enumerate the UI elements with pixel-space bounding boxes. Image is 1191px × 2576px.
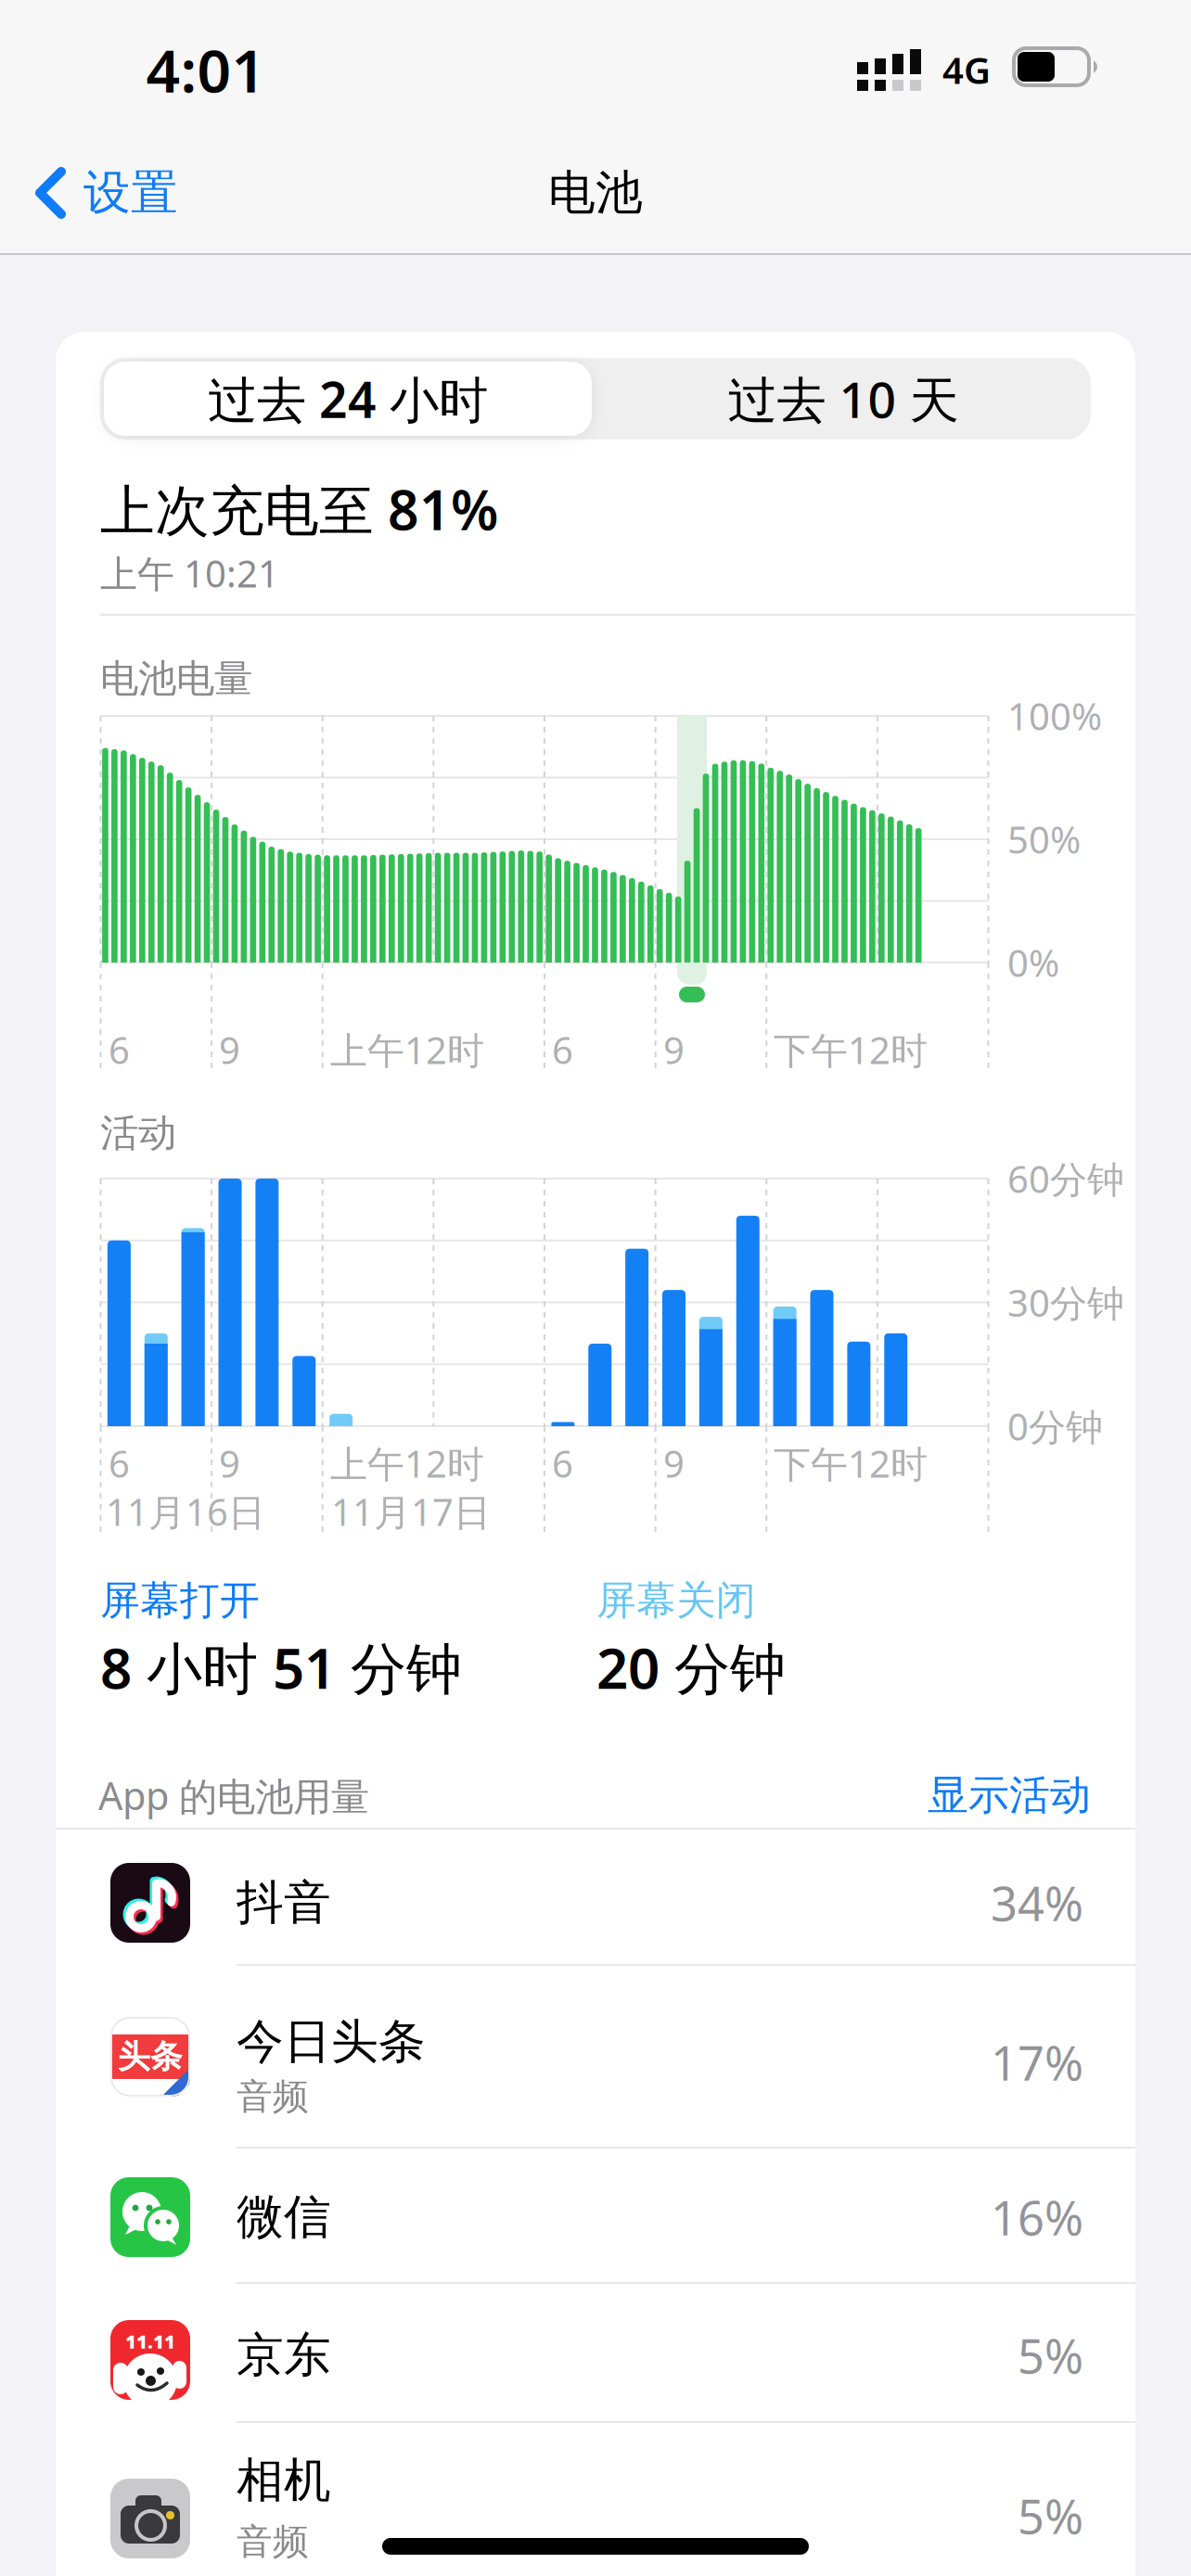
staticText: 9 [219,1439,240,1488]
staticText: 今日头条 [237,2013,426,2071]
staticText: 上次充电至 81% [100,473,498,545]
button[interactable]: 抖音 [56,1829,1135,1965]
button[interactable]: 设置 [33,163,178,223]
staticText: 头条 [118,2037,183,2076]
staticText: 相机 [237,2452,331,2509]
staticText: 京东 [237,2326,331,2384]
staticText: App 的电池用量 [98,1770,369,1821]
staticText: 过去 10 天 [728,366,959,432]
staticText: 6 [552,1439,573,1488]
staticText: 音频 [237,2520,309,2564]
staticText: 4:01 [146,30,266,109]
staticText: 下午12时 [774,1439,928,1488]
staticText: 6 [109,1439,130,1488]
staticText: 8 小时 51 分钟 [100,1630,462,1704]
staticText: 屏幕打开 [100,1576,260,1625]
button[interactable]: 显示活动 [813,1769,1091,1821]
staticText: 上午12时 [330,1439,484,1488]
staticText: 微信 [237,2188,331,2246]
staticText: 0% [1007,938,1059,987]
staticText: 6 [552,1025,573,1074]
staticText: 11月17日 [331,1487,491,1536]
staticText: 4G [942,45,991,94]
staticText: 显示活动 [928,1770,1091,1820]
staticText: 活动 [100,1110,176,1157]
staticText: 电池电量 [100,655,252,702]
staticText: 上午12时 [330,1025,484,1074]
button[interactable]: 微信 [56,2148,1135,2283]
staticText: 6 [109,1025,130,1074]
button[interactable]: 过去 24 小时 [104,362,592,436]
staticText: 过去 24 小时 [208,366,488,432]
staticText: 50% [1007,815,1081,864]
staticText: 电池 [548,164,643,222]
button[interactable]: 头条 [56,1965,1135,2148]
staticText: 上午 10:21 [100,548,279,598]
staticText: 34% [991,1872,1083,1934]
staticText: 60分钟 [1007,1154,1124,1203]
staticText: 17% [991,2031,1083,2094]
staticText: 11.11 [125,2329,175,2354]
staticText: 30分钟 [1007,1278,1124,1327]
staticText: 0分钟 [1007,1401,1103,1451]
staticText: 5% [1018,2485,1083,2547]
staticText: 音频 [237,2075,309,2119]
staticText: 11月16日 [106,1487,265,1536]
staticText: 16% [991,2186,1083,2248]
staticText: 9 [219,1025,240,1074]
button[interactable]: 11.11 [56,2283,1135,2422]
staticText: 设置 [83,164,178,222]
staticText: 下午12时 [774,1025,928,1074]
staticText: 5% [1018,2324,1083,2387]
button[interactable]: 过去 10 天 [597,362,1089,436]
staticText: 屏幕关闭 [596,1576,756,1625]
staticText: 抖音 [237,1874,331,1932]
staticText: 20 分钟 [596,1630,786,1704]
staticText: 9 [663,1025,685,1074]
button[interactable]: 相机 [56,2422,1135,2576]
staticText: 9 [663,1439,685,1488]
staticText: 100% [1007,691,1102,740]
